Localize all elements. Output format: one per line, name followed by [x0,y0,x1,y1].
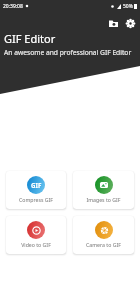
staticText: 50% [123,3,133,10]
button[interactable]: GIF [6,171,66,209]
button[interactable]: Camera to GIF [73,216,134,254]
button[interactable]: Images to GIF [73,171,134,209]
button[interactable]: My GIFs folder [106,16,120,30]
staticText: Video to GIF [21,241,51,248]
staticText: Camera to GIF [86,241,121,248]
button[interactable]: Settings [123,16,137,30]
staticText: An awesome and professional GIF Editor [4,48,132,57]
staticText: Images to GIF [86,196,121,203]
staticText: GIF Editor [4,31,56,46]
staticText: GIF [31,181,42,189]
staticText: Compress GIF [19,196,53,203]
button[interactable]: Video to GIF [6,216,66,254]
staticText: 20:39:08 [3,3,23,10]
